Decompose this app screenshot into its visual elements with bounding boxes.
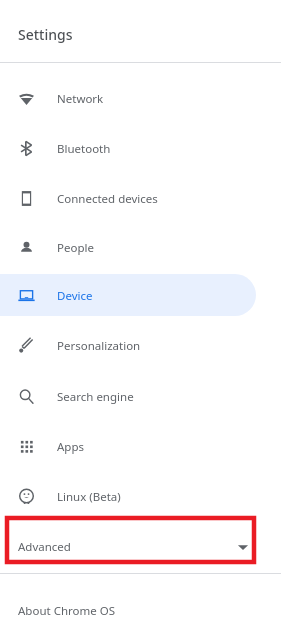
- button[interactable]: Device: [0, 271, 281, 319]
- staticText: Settings: [18, 25, 73, 44]
- staticText: Connected devices: [57, 191, 158, 207]
- staticText: Apps: [57, 439, 85, 455]
- button[interactable]: Advanced: [0, 521, 281, 573]
- button[interactable]: Bluetooth: [0, 123, 281, 173]
- button[interactable]: Search engine: [0, 371, 281, 421]
- staticText: Advanced: [18, 539, 71, 555]
- staticText: Personalization: [57, 338, 141, 354]
- button[interactable]: About Chrome OS: [0, 592, 281, 630]
- button[interactable]: People: [0, 223, 281, 271]
- staticText: Network: [57, 91, 104, 107]
- button[interactable]: Personalization: [0, 319, 281, 371]
- staticText: People: [57, 240, 94, 256]
- button[interactable]: Linux (Beta): [0, 471, 281, 521]
- staticText: Linux (Beta): [57, 489, 121, 505]
- button[interactable]: Apps: [0, 421, 281, 471]
- staticText: Device: [57, 288, 93, 304]
- other: Expand advanced: [237, 541, 249, 553]
- staticText: Search engine: [57, 389, 134, 405]
- button[interactable]: Network: [0, 73, 281, 123]
- staticText: Bluetooth: [57, 141, 111, 157]
- staticText: About Chrome OS: [18, 603, 116, 619]
- button[interactable]: Connected devices: [0, 173, 281, 223]
